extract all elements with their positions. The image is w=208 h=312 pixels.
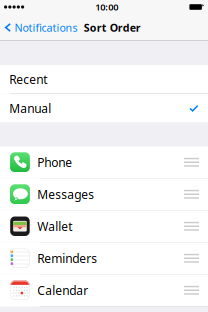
button[interactable]: Messages [0, 178, 208, 210]
staticText: Recent [9, 71, 47, 87]
staticText: Notifications [14, 20, 77, 35]
button[interactable]: Notifications [0, 15, 77, 40]
button[interactable]: Calendar [0, 274, 208, 306]
staticText: 10:00 [95, 1, 118, 13]
staticText: Sort Order [84, 20, 141, 35]
staticText: Wallet [37, 218, 72, 234]
button[interactable]: Wallet [0, 210, 208, 242]
button[interactable]: Manual [0, 94, 208, 122]
staticText: Phone [37, 154, 72, 170]
staticText: Manual [9, 100, 51, 116]
staticText: Messages [37, 186, 94, 202]
staticText: Calendar [37, 282, 88, 298]
button[interactable]: Reminders [0, 242, 208, 274]
button[interactable]: Recent [0, 65, 208, 93]
staticText: Reminders [37, 250, 97, 266]
button[interactable]: Phone [0, 146, 208, 178]
